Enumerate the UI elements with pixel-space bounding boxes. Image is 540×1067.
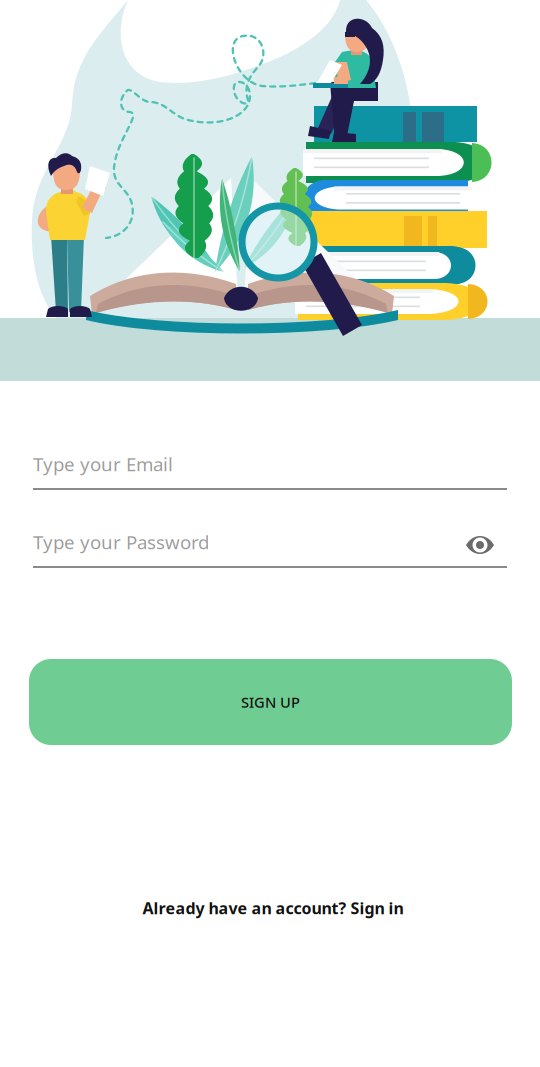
button[interactable]: SIGN UP: [29, 659, 512, 745]
staticText: Already have an account? Sign in: [142, 897, 403, 919]
button[interactable]: Already have an account? Sign in: [63, 893, 483, 923]
staticText: Type your Email: [33, 452, 173, 476]
staticText: SIGN UP: [241, 692, 300, 712]
button[interactable]: Show password: [452, 523, 508, 567]
staticText: Type your Password: [33, 530, 209, 554]
